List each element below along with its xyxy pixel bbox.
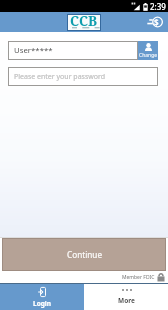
button[interactable]: Login: [0, 284, 84, 310]
staticText: $: [154, 17, 159, 28]
button[interactable]: More: [84, 284, 168, 310]
staticText: User*****: [14, 45, 53, 56]
button[interactable]: Change: [138, 41, 158, 60]
button[interactable]: Please enter your password: [8, 67, 158, 86]
staticText: Login: [33, 299, 51, 308]
staticText: 2:39: [150, 1, 166, 12]
staticText: Member FDIC: [122, 274, 155, 281]
staticText: More: [118, 296, 135, 305]
button[interactable]: Rates: [146, 13, 164, 31]
staticText: Please enter your password: [14, 72, 106, 82]
staticText: Change: [139, 52, 158, 59]
button[interactable]: CCB logo: [67, 14, 101, 31]
staticText: Continue: [67, 249, 102, 260]
staticText: CCB: [70, 12, 98, 29]
button[interactable]: Continue: [3, 239, 165, 270]
button[interactable]: User*****: [8, 41, 138, 60]
